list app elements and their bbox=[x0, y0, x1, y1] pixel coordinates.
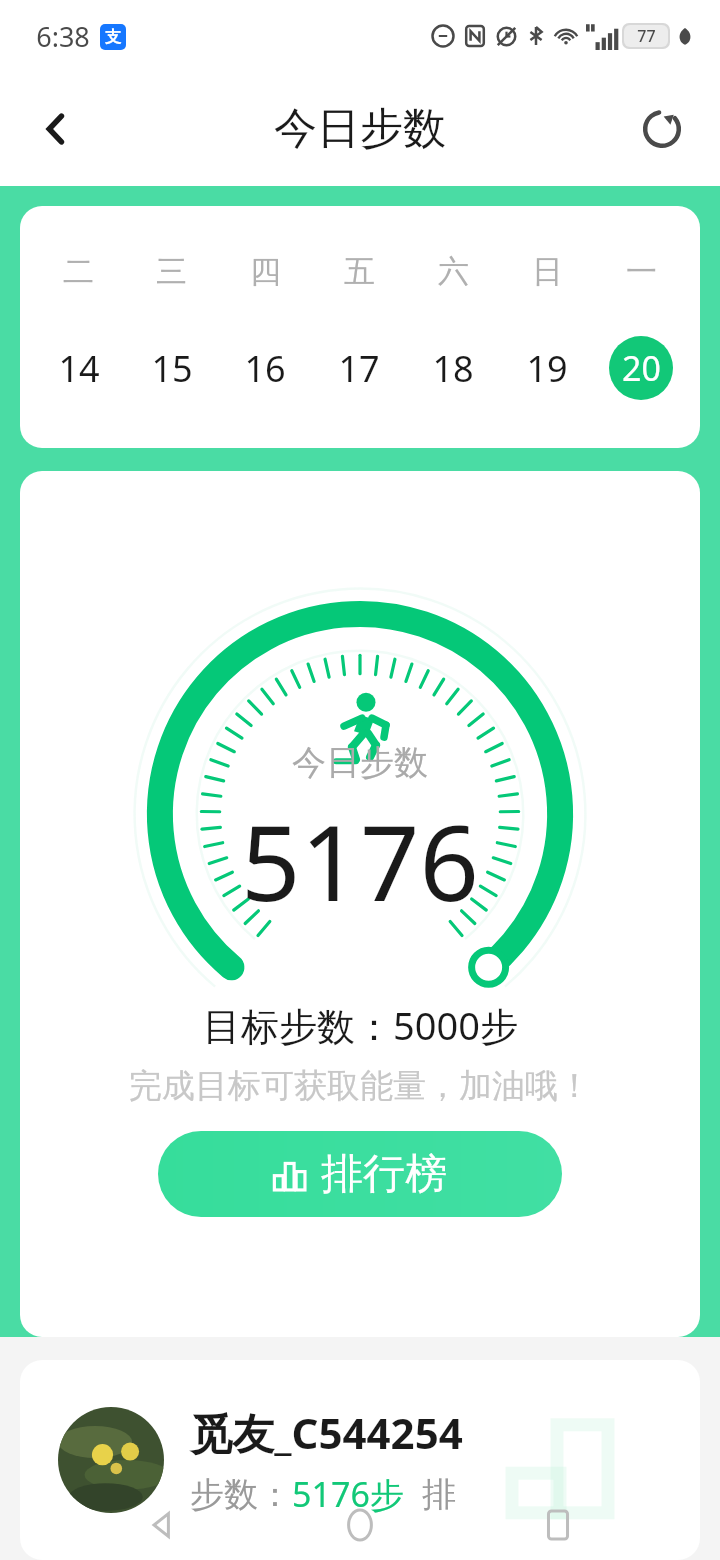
staticText: 今日步数 bbox=[292, 741, 428, 784]
button[interactable]: 14 bbox=[32, 335, 125, 401]
button[interactable]: 19 bbox=[500, 335, 594, 401]
staticText: 六 bbox=[438, 252, 469, 291]
button[interactable]: 16 bbox=[218, 335, 312, 401]
button[interactable]: Refresh bbox=[626, 93, 698, 165]
staticText: 15 bbox=[151, 344, 193, 393]
staticText: 完成目标可获取能量，加油哦！ bbox=[129, 1065, 591, 1107]
staticText: 14 bbox=[58, 344, 100, 393]
button[interactable]: 18 bbox=[406, 335, 500, 401]
button[interactable]: Home bbox=[325, 1490, 395, 1560]
staticText: 排 bbox=[422, 1473, 456, 1516]
button[interactable]: 排行榜 bbox=[158, 1131, 562, 1217]
button[interactable]: Back bbox=[20, 93, 92, 165]
staticText: 18 bbox=[432, 344, 474, 393]
staticText: 四 bbox=[250, 252, 281, 291]
button[interactable]: Recents bbox=[523, 1490, 593, 1560]
staticText: 今日步数 bbox=[274, 102, 446, 156]
staticText: 排行榜 bbox=[321, 1148, 447, 1201]
button[interactable]: Back bbox=[128, 1490, 198, 1560]
staticText: 觅友_C544254 bbox=[190, 1404, 463, 1461]
staticText: 一 bbox=[626, 252, 657, 291]
staticText: 支 bbox=[105, 27, 121, 47]
staticText: 19 bbox=[526, 344, 568, 393]
button[interactable]: 15 bbox=[125, 335, 218, 401]
staticText: 77 bbox=[637, 25, 656, 47]
button[interactable]: 觅友_C544254 bbox=[20, 1360, 700, 1560]
staticText: 五 bbox=[344, 252, 375, 291]
staticText: 三 bbox=[156, 252, 187, 291]
staticText: 二 bbox=[63, 252, 94, 291]
staticText: 5176步 bbox=[292, 1471, 404, 1517]
staticText: 20 bbox=[622, 345, 661, 391]
button[interactable]: 20 bbox=[594, 335, 688, 401]
button[interactable]: 17 bbox=[312, 335, 406, 401]
staticText: 5176 bbox=[241, 790, 479, 932]
staticText: 6:38 bbox=[36, 18, 90, 55]
staticText: 目标步数：5000步 bbox=[203, 999, 518, 1051]
staticText: 17 bbox=[338, 344, 380, 393]
staticText: 步数： bbox=[190, 1473, 292, 1516]
staticText: 日 bbox=[532, 252, 563, 291]
staticText: 16 bbox=[244, 344, 286, 393]
